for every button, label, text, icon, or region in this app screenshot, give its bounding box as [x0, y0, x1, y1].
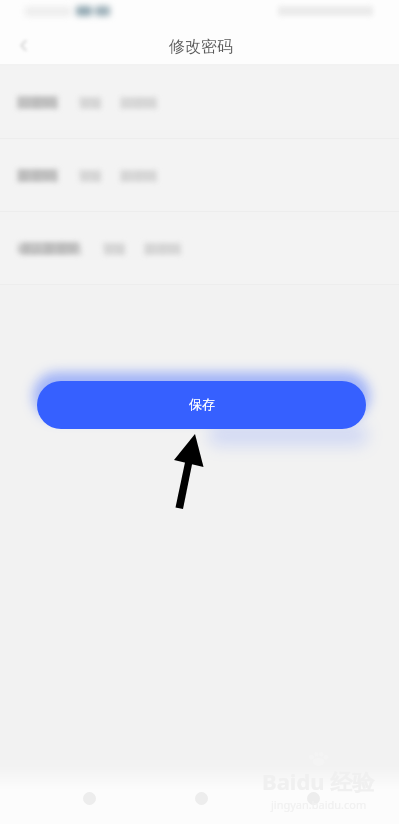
button[interactable]: 旧密码	[0, 66, 399, 138]
staticText: 请输	[102, 241, 126, 256]
staticText: 旧密码	[18, 94, 57, 110]
staticText: 保存	[189, 396, 215, 412]
button[interactable]: 新密码	[0, 139, 399, 211]
staticText: 请输	[78, 95, 102, 110]
staticText: 确认新密码	[17, 240, 82, 256]
button[interactable]: Back	[10, 32, 36, 58]
button[interactable]: Tab	[76, 785, 102, 811]
staticText: 新密码	[121, 168, 157, 183]
button[interactable]: Tab	[300, 785, 326, 811]
staticText: 请输	[78, 168, 102, 183]
staticText: 旧密码	[121, 95, 157, 110]
staticText: 新密码	[18, 167, 57, 183]
button[interactable]: 确认新密码	[0, 212, 399, 284]
button[interactable]: 保存	[37, 381, 366, 429]
button[interactable]: Tab	[188, 785, 214, 811]
staticText: 新密码	[145, 241, 181, 256]
staticText: 修改密码	[169, 37, 233, 57]
staticText: Baidu 经验	[262, 766, 375, 796]
staticText: jingyan.baidu.com	[271, 797, 367, 812]
